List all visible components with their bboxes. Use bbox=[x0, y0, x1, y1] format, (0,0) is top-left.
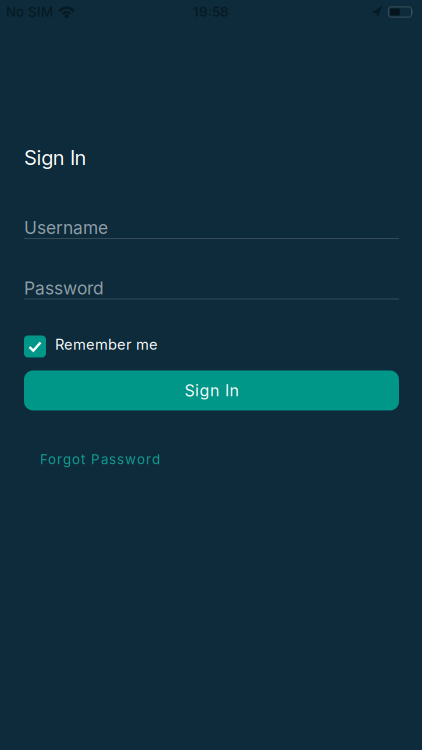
button[interactable]: Password bbox=[0, 278, 399, 299]
staticText: Username bbox=[24, 218, 108, 238]
button[interactable]: Sign In bbox=[24, 370, 399, 410]
staticText: Password bbox=[24, 278, 104, 298]
button[interactable]: Username bbox=[0, 218, 399, 239]
button[interactable]: Forgot Password bbox=[0, 451, 160, 467]
staticText: Sign In bbox=[184, 381, 238, 400]
button[interactable]: Remember me bbox=[0, 335, 158, 357]
staticText: 19:58 bbox=[193, 4, 229, 20]
staticText: Sign In bbox=[24, 146, 87, 170]
staticText: Remember me bbox=[55, 336, 158, 353]
staticText: Forgot Password bbox=[40, 451, 160, 467]
staticText: No SIM bbox=[6, 4, 53, 20]
